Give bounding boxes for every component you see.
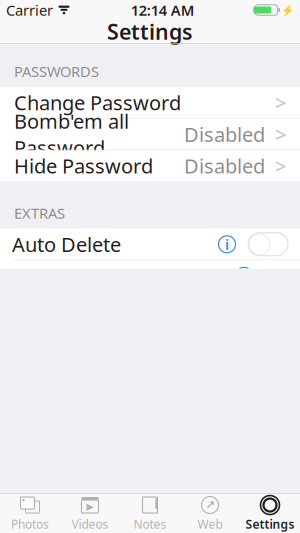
staticText: Hide Password: [14, 152, 153, 179]
staticText: >: [275, 263, 286, 289]
staticText: >: [275, 121, 286, 147]
staticText: Disabled: [184, 152, 265, 179]
staticText: Log: [14, 263, 48, 289]
staticText: ↗: [205, 498, 215, 512]
staticText: Settings: [245, 516, 294, 532]
button[interactable]: Photos: [0, 494, 60, 532]
button[interactable]: Change Password: [0, 87, 300, 118]
button[interactable]: Web: [180, 494, 240, 532]
button[interactable]: Notes: [120, 494, 180, 532]
staticText: Bomb'em all Password: [14, 108, 129, 161]
button[interactable]: Videos: [60, 494, 120, 532]
staticText: Photos: [11, 516, 49, 532]
staticText: PASSWORDS: [14, 62, 99, 81]
staticText: i: [225, 234, 229, 254]
staticText: Settings: [107, 17, 193, 46]
staticText: EXTRAS: [14, 203, 65, 223]
staticText: Disabled: [184, 121, 265, 147]
staticText: 12:14 AM: [131, 0, 195, 20]
staticText: Auto Delete: [12, 231, 121, 258]
staticText: Carrier: [6, 0, 53, 20]
button[interactable]: Log: [0, 260, 300, 291]
button[interactable]: Auto Delete: [0, 229, 300, 260]
button[interactable]: Hide Password: [0, 150, 300, 181]
staticText: >: [275, 152, 286, 179]
button[interactable]: Settings: [240, 494, 300, 532]
staticText: Notes: [133, 516, 166, 532]
staticText: i: [242, 266, 246, 286]
staticText: ⚡: [281, 4, 294, 16]
staticText: Change Password: [14, 89, 181, 116]
button[interactable]: Bomb'em all Password: [0, 119, 300, 150]
staticText: Videos: [71, 516, 108, 532]
staticText: Web: [197, 516, 222, 532]
staticText: ▶: [86, 501, 93, 512]
staticText: >: [275, 89, 286, 116]
